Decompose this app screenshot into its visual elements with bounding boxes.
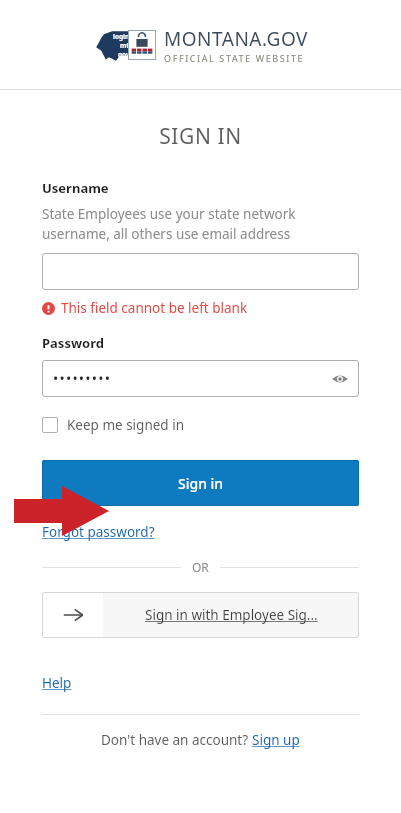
staticText: ••••••••• — [53, 369, 112, 388]
staticText: SIGN IN — [42, 122, 359, 151]
button[interactable]: Keep me signed in — [42, 416, 184, 434]
staticText: This field cannot be left blank — [61, 299, 248, 317]
staticText: Username — [42, 179, 109, 197]
button[interactable]: Help — [42, 674, 72, 692]
staticText: State Employees use your state network u… — [42, 205, 296, 243]
staticText: OR — [192, 559, 209, 575]
staticText: Sign in — [178, 474, 224, 493]
button[interactable]: Forgot password? — [42, 523, 155, 541]
staticText: Password — [42, 334, 104, 352]
button[interactable]: Sign in with Employee Sig... — [42, 592, 359, 638]
staticText: Keep me signed in — [67, 416, 184, 434]
staticText: Sign in with Employee Sig... — [145, 606, 318, 624]
staticText: mt — [120, 41, 130, 50]
button[interactable]: ••••••••• — [42, 360, 359, 397]
staticText: MONTANA.GOV — [164, 26, 308, 52]
staticText: gov — [118, 50, 130, 59]
button[interactable]: Show password — [329, 368, 351, 390]
staticText: OFFICIAL STATE WEBSITE — [164, 52, 305, 64]
staticText: login — [113, 32, 130, 41]
button[interactable] — [42, 253, 359, 290]
button[interactable]: Sign in — [42, 460, 359, 506]
button[interactable]: Sign up — [252, 731, 300, 749]
staticText: Don't have an account? — [101, 731, 252, 749]
